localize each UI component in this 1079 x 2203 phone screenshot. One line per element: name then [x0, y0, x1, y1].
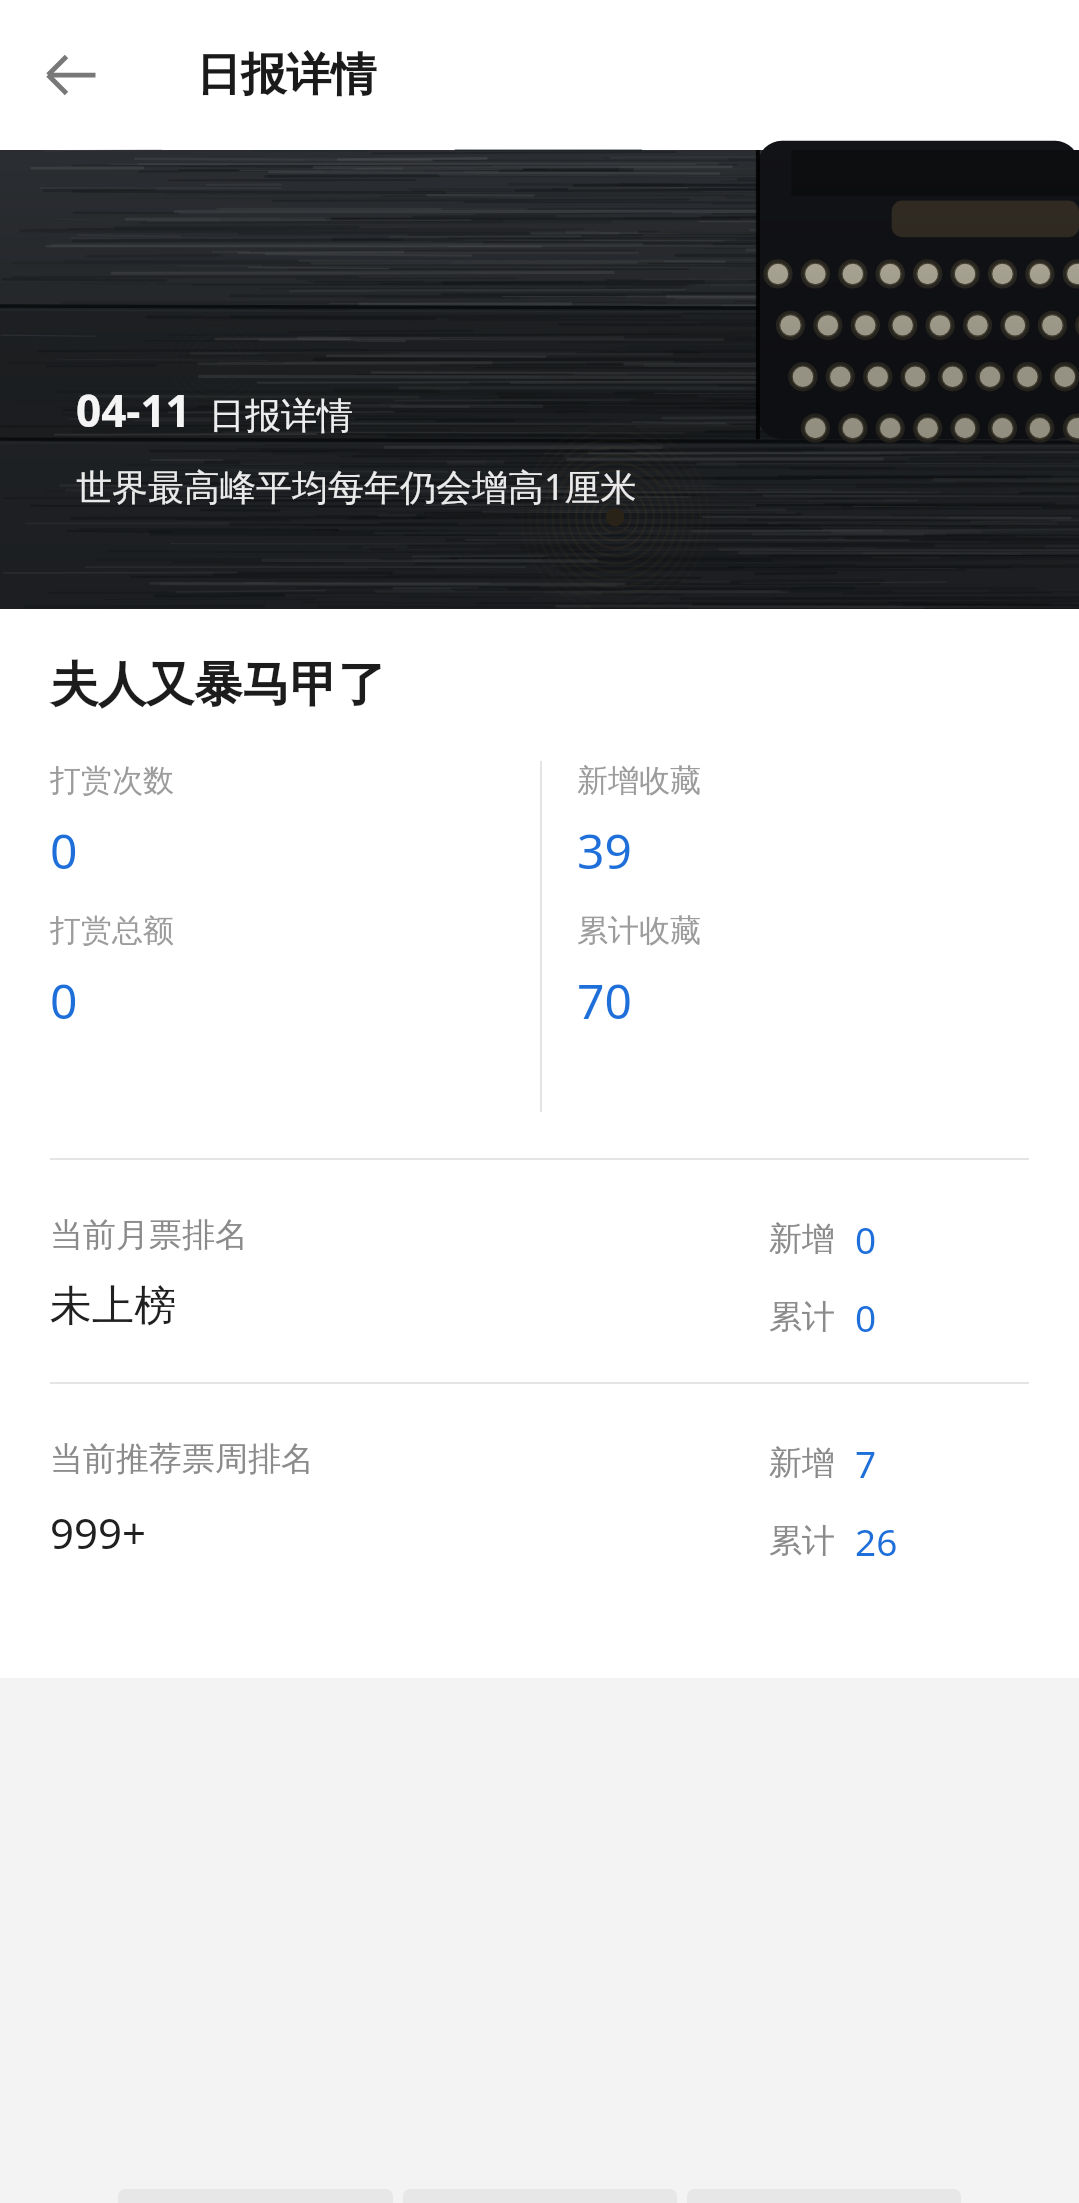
staticText: 打赏次数 — [50, 761, 174, 800]
staticText: 26 — [855, 1516, 898, 1566]
button[interactable]: 当前月票排名 — [0, 1160, 1079, 1382]
staticText: 7 — [855, 1438, 877, 1488]
staticText: 当前推荐票周排名 — [50, 1438, 314, 1480]
staticText: 0 — [50, 968, 78, 1033]
staticText: 新增 — [769, 1442, 835, 1484]
staticText: 70 — [577, 968, 632, 1033]
staticText: 新增 — [769, 1218, 835, 1260]
staticText: 日报详情 — [196, 47, 376, 104]
staticText: 夫人又暴马甲了 — [50, 655, 386, 715]
staticText: 累计 — [769, 1520, 835, 1562]
staticText: 0 — [855, 1292, 877, 1342]
staticText: 0 — [855, 1214, 877, 1264]
staticText: 04-11 — [76, 380, 191, 440]
staticText: 39 — [577, 818, 632, 883]
staticText: 当前月票排名 — [50, 1214, 248, 1256]
staticText: 日报详情 — [209, 393, 353, 438]
button[interactable]: Back — [28, 32, 114, 118]
staticText: 未上榜 — [50, 1280, 176, 1333]
staticText: 打赏总额 — [50, 911, 174, 950]
staticText: 999+ — [50, 1504, 147, 1561]
staticText: 累计收藏 — [577, 911, 701, 950]
staticText: 新增收藏 — [577, 761, 701, 800]
staticText: 累计 — [769, 1296, 835, 1338]
staticText: 0 — [50, 818, 78, 883]
button[interactable]: 当前推荐票周排名 — [0, 1384, 1079, 1606]
staticText: 世界最高峰平均每年仍会增高1厘米 — [76, 462, 637, 511]
